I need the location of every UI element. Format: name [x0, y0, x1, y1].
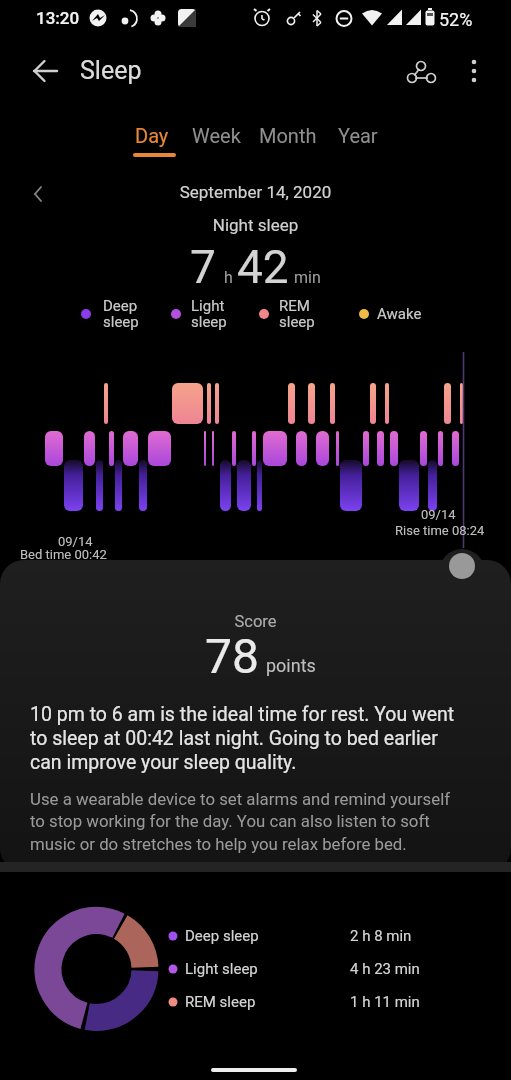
staticText: Sleep	[80, 56, 142, 85]
staticText: 1 h 11 min	[350, 993, 420, 1011]
staticText: REM sleep	[279, 297, 315, 331]
staticText: Bed time 00:42	[20, 547, 107, 562]
staticText: Score	[0, 612, 511, 631]
staticText: 13:20	[36, 8, 80, 28]
staticText: 7	[190, 240, 216, 294]
staticText: 42	[237, 240, 289, 294]
staticText: 2 h 8 min	[350, 927, 412, 945]
staticText: min	[294, 268, 321, 287]
staticText: September 14, 2020	[0, 182, 511, 202]
staticText: Deep sleep	[185, 927, 259, 945]
staticText: Use a wearable device to set alarms and …	[30, 789, 451, 854]
staticText: Light sleep	[185, 960, 258, 978]
staticText: 09/14	[421, 507, 456, 522]
staticText: Deep sleep	[103, 297, 139, 331]
staticText: Week	[192, 124, 241, 147]
staticText: Month	[259, 124, 317, 147]
staticText: Year	[338, 124, 378, 147]
staticText: h	[224, 268, 233, 287]
staticText: points	[266, 655, 316, 676]
staticText: 78	[205, 628, 259, 684]
staticText: 52%	[439, 9, 473, 30]
staticText: Awake	[377, 305, 422, 323]
staticText: Day	[135, 124, 169, 147]
staticText: Night sleep	[0, 215, 511, 235]
staticText: 09/14	[58, 534, 93, 549]
staticText: 4 h 23 min	[350, 960, 420, 978]
staticText: 10 pm to 6 am is the ideal time for rest…	[30, 703, 455, 774]
staticText: Light sleep	[191, 297, 227, 331]
staticText: Rise time 08:24	[395, 523, 485, 538]
staticText: REM sleep	[185, 993, 256, 1011]
